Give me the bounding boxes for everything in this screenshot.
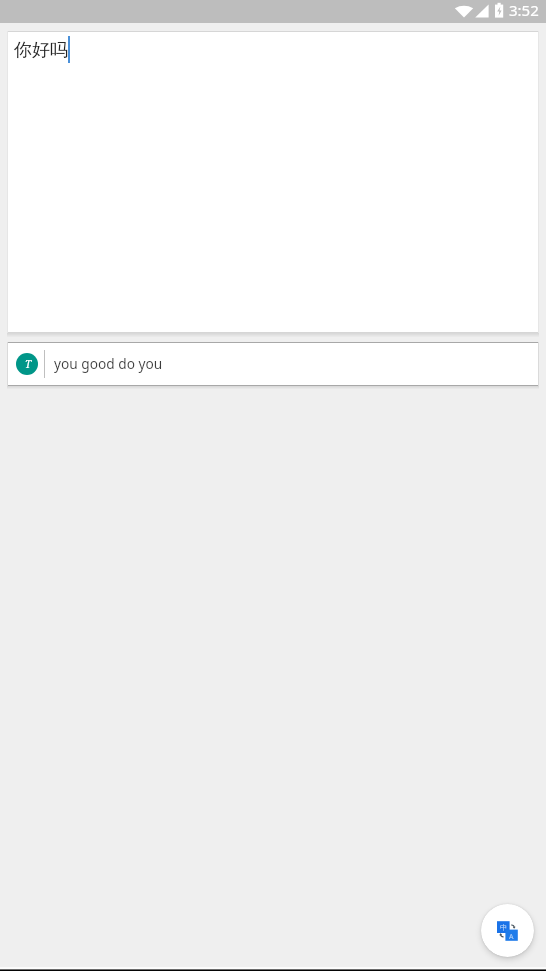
staticText: T bbox=[25, 357, 32, 371]
button[interactable]: 你好吗 bbox=[7, 31, 539, 333]
staticText: 3:52 bbox=[509, 0, 539, 20]
staticText: 中 bbox=[500, 923, 507, 932]
staticText: you good do you bbox=[54, 354, 163, 373]
staticText: 你好吗 bbox=[14, 39, 68, 62]
button[interactable]: Translate bbox=[481, 904, 534, 957]
button[interactable]: T bbox=[7, 342, 539, 386]
staticText: A bbox=[509, 932, 514, 942]
